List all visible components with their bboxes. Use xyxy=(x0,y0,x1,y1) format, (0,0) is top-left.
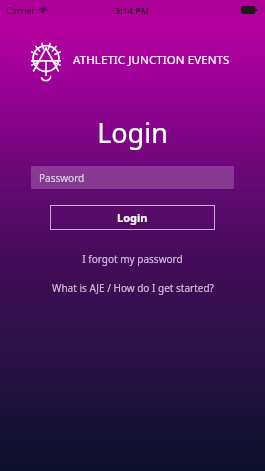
staticText: What is AJE / How do I get started? xyxy=(52,281,214,295)
staticText: Login xyxy=(117,210,148,225)
button[interactable]: Password xyxy=(31,166,234,189)
other: Athletic Junction Events logo xyxy=(28,42,64,78)
staticText: Password xyxy=(39,171,85,185)
staticText: Carrier xyxy=(6,4,36,16)
staticText: Login xyxy=(0,114,265,151)
staticText: ATHLETIC JUNCTION EVENTS xyxy=(73,52,230,68)
staticText: I forgot my password xyxy=(82,252,183,266)
staticText: 3:14 PM xyxy=(115,4,150,16)
button[interactable]: What is AJE / How do I get started? xyxy=(0,281,265,295)
button[interactable]: Login xyxy=(50,205,215,230)
button[interactable]: I forgot my password xyxy=(0,252,265,266)
